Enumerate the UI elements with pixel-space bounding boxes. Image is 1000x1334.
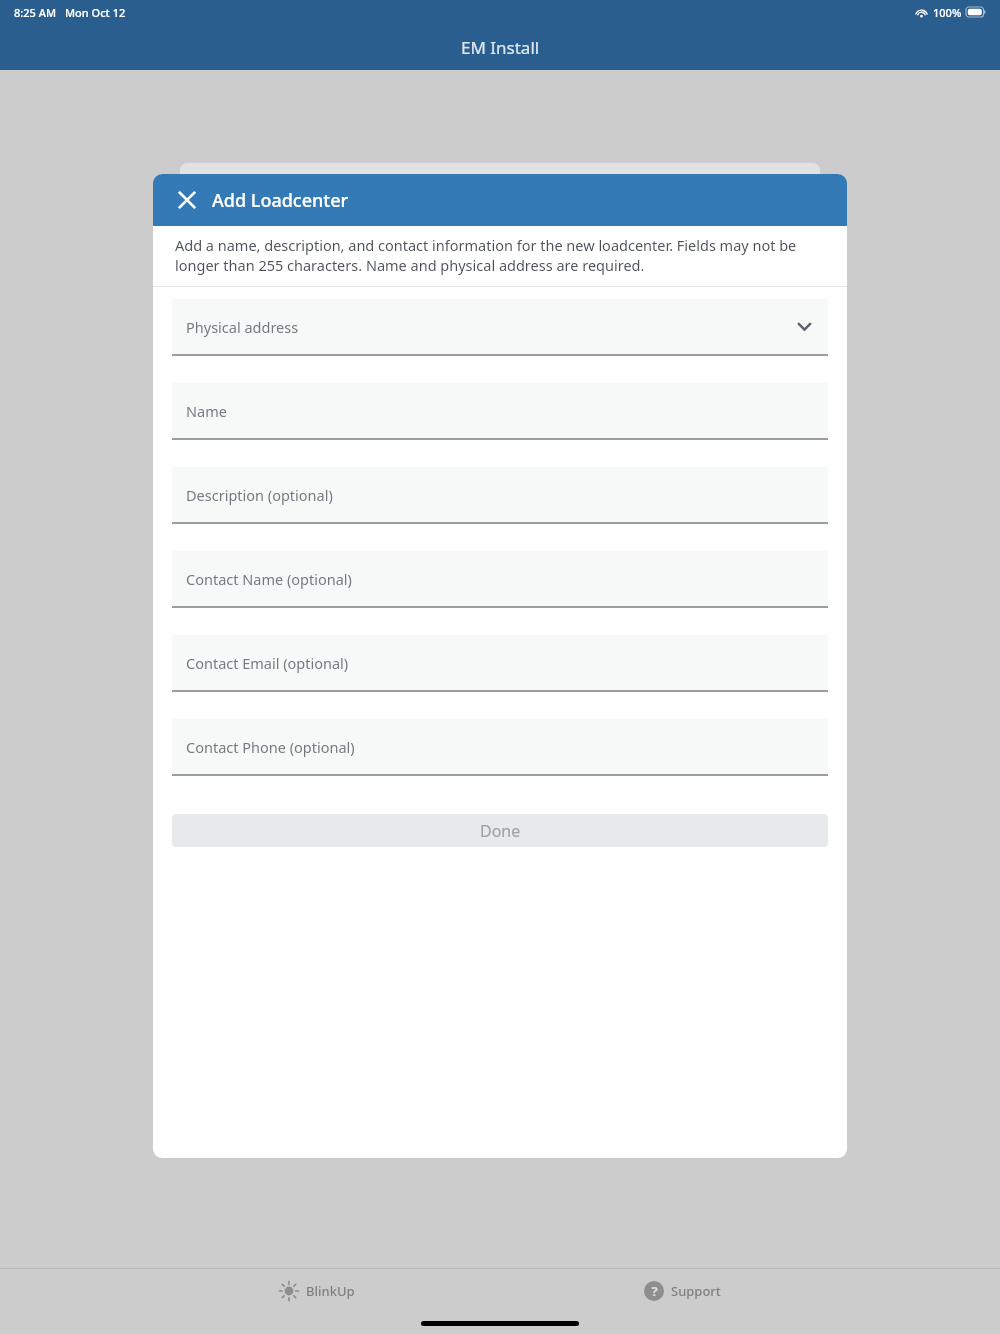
staticText: ?: [651, 1282, 658, 1300]
button[interactable]: Physical address: [172, 299, 828, 356]
staticText: Name: [186, 401, 227, 421]
button[interactable]: BlinkUp: [269, 1277, 365, 1305]
staticText: Support: [671, 1282, 721, 1300]
staticText: BlinkUp: [306, 1282, 355, 1300]
button[interactable]: Done: [172, 814, 828, 847]
staticText: Mon Oct 12: [65, 5, 126, 20]
button[interactable]: Name: [172, 383, 828, 440]
staticText: Description (optional): [186, 485, 333, 505]
staticText: EM Install: [461, 36, 540, 59]
staticText: Add Loadcenter: [212, 188, 349, 213]
staticText: Contact Email (optional): [186, 653, 349, 673]
staticText: Contact Name (optional): [186, 569, 352, 589]
staticText: Add a name, description, and contact inf…: [175, 235, 825, 276]
staticText: 8:25 AM: [14, 5, 57, 20]
staticText: Done: [480, 820, 521, 842]
button[interactable]: Description (optional): [172, 467, 828, 524]
staticText: Contact Phone (optional): [186, 737, 355, 757]
button[interactable]: ?: [634, 1277, 731, 1305]
button[interactable]: Contact Email (optional): [172, 635, 828, 692]
button[interactable]: Contact Name (optional): [172, 551, 828, 608]
staticText: 100%: [933, 5, 962, 20]
staticText: Physical address: [186, 317, 299, 337]
button[interactable]: Contact Phone (optional): [172, 719, 828, 776]
button[interactable]: Close: [170, 183, 204, 217]
